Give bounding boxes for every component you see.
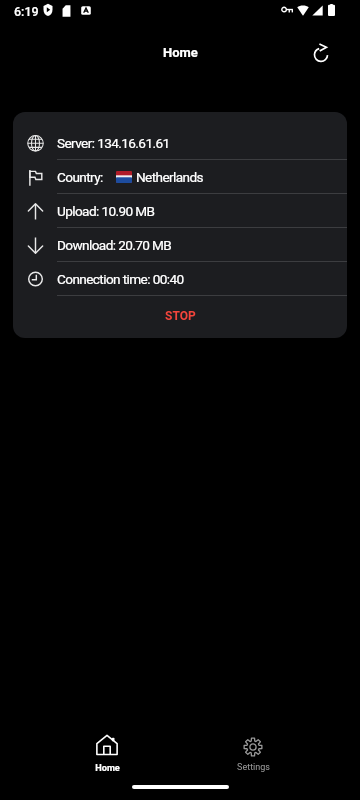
staticText: STOP (165, 309, 196, 323)
staticText: Home (95, 762, 120, 773)
button[interactable]: Settings (180, 720, 326, 782)
staticText: Home (163, 45, 198, 60)
staticText: Netherlands (136, 169, 203, 185)
other: Server (27, 135, 44, 152)
staticText: Server: 134.16.61.61 (57, 135, 170, 151)
button[interactable]: Download (13, 228, 347, 261)
staticText: Country: (57, 169, 103, 185)
staticText: Settings (237, 762, 270, 773)
button[interactable]: Refresh (300, 31, 342, 73)
staticText: Connection time: 00:40 (57, 271, 184, 287)
button[interactable]: Server (13, 126, 347, 159)
other: Country (27, 169, 44, 186)
button[interactable]: Upload (13, 194, 347, 227)
staticText: Upload: 10.90 MB (57, 203, 155, 219)
button[interactable]: STOP (13, 296, 347, 338)
button[interactable]: Connection time (13, 262, 347, 295)
other: Connection time (27, 271, 44, 288)
staticText: 6:19 (14, 4, 39, 19)
button[interactable]: Home (34, 720, 180, 782)
staticText: Download: 20.70 MB (57, 237, 172, 253)
button[interactable]: Country (13, 160, 347, 193)
other: Upload (27, 203, 44, 220)
other: Download (27, 237, 44, 254)
